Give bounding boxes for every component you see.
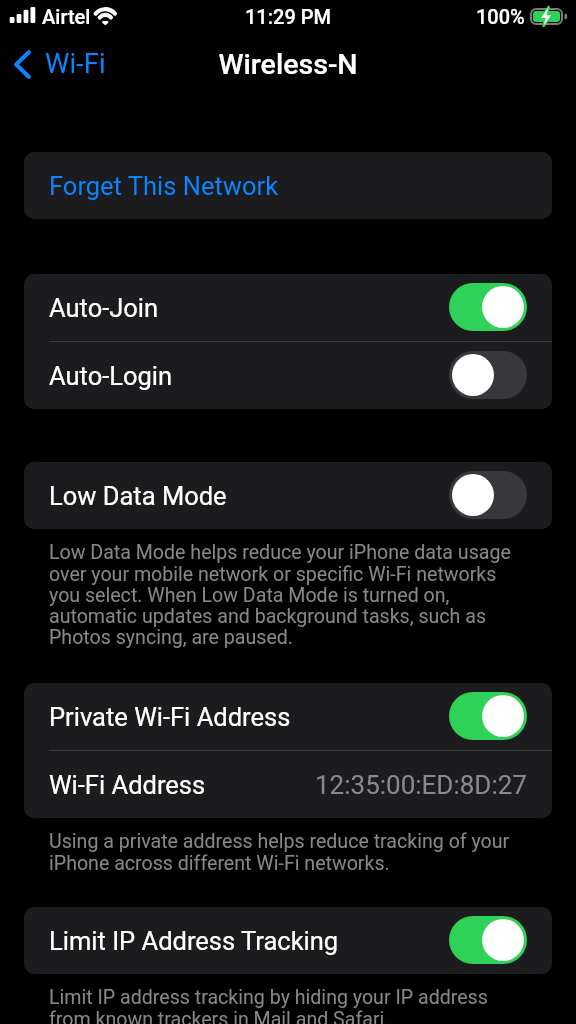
staticText: Wi-Fi: [45, 47, 106, 79]
button[interactable]: Forget This Network: [24, 152, 552, 219]
staticText: Forget This Network: [49, 171, 279, 201]
button[interactable]: Switch off: [449, 351, 527, 399]
staticText: Wireless-N: [218, 48, 358, 81]
button[interactable]: Private Wi-Fi Address: [24, 683, 552, 750]
staticText: 12:35:00:ED:8D:27: [315, 770, 527, 800]
staticText: Airtel: [42, 5, 91, 28]
staticText: Wi-Fi Address: [49, 770, 206, 800]
staticText: Limit IP address tracking by hiding your…: [49, 986, 488, 1024]
staticText: 11:29 PM: [245, 5, 332, 28]
staticText: Low Data Mode helps reduce your iPhone d…: [49, 541, 511, 649]
staticText: Private Wi-Fi Address: [49, 702, 291, 732]
staticText: 100%: [476, 5, 525, 28]
button[interactable]: Back to Wi-Fi: [0, 42, 118, 86]
staticText: Auto-Join: [49, 293, 159, 323]
button[interactable]: Switch on: [449, 283, 527, 331]
button[interactable]: Switch on: [449, 692, 527, 740]
staticText: Auto-Login: [49, 361, 173, 391]
button[interactable]: Switch on: [449, 916, 527, 964]
button[interactable]: Low Data Mode: [24, 462, 552, 529]
button[interactable]: Limit IP Address Tracking: [24, 907, 552, 974]
button[interactable]: Auto-Login: [24, 342, 552, 409]
staticText: Limit IP Address Tracking: [49, 926, 339, 956]
staticText: Using a private address helps reduce tra…: [49, 830, 510, 875]
button[interactable]: Switch off: [449, 471, 527, 519]
button[interactable]: Auto-Join: [24, 274, 552, 341]
button[interactable]: Wi-Fi Address: [24, 751, 552, 818]
staticText: Low Data Mode: [49, 481, 227, 511]
